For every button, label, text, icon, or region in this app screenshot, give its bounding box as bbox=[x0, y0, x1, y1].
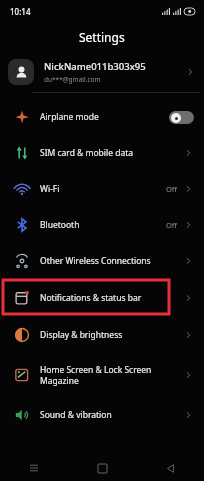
staticText: Bluetooth bbox=[40, 219, 166, 231]
staticText: Sound & vibration bbox=[40, 409, 184, 421]
button[interactable]: Bluetooth bbox=[0, 207, 204, 243]
staticText: Off bbox=[166, 220, 178, 230]
button[interactable]: Other Wireless Connections bbox=[0, 243, 204, 279]
staticText: Wi-Fi bbox=[40, 183, 166, 195]
staticText: NickName011b303x95 bbox=[44, 60, 146, 73]
button[interactable]: Home bbox=[68, 455, 136, 481]
staticText: Settings bbox=[79, 29, 125, 45]
button[interactable]: Sound & vibration bbox=[0, 397, 204, 433]
button[interactable]: NickName011b303x95 bbox=[0, 52, 204, 92]
button[interactable]: Airplane mode bbox=[0, 99, 204, 135]
staticText: Airplane mode bbox=[40, 111, 169, 123]
button[interactable]: Home Screen & Lock Screen Magazine bbox=[0, 353, 204, 397]
button[interactable]: Display & brightness bbox=[0, 317, 204, 353]
staticText: Off bbox=[166, 184, 178, 194]
button[interactable]: Recents bbox=[0, 455, 68, 481]
button[interactable]: SIM card & mobile data bbox=[0, 135, 204, 171]
button[interactable]: Back bbox=[136, 455, 204, 481]
staticText: Other Wireless Connections bbox=[40, 255, 184, 267]
staticText: Display & brightness bbox=[40, 329, 184, 341]
button[interactable]: Wi-Fi bbox=[0, 171, 204, 207]
button[interactable]: Airplane mode toggle bbox=[169, 111, 194, 124]
staticText: SIM card & mobile data bbox=[40, 147, 184, 159]
button[interactable]: Notifications & status bar bbox=[0, 279, 204, 317]
staticText: du***@gmail.com bbox=[44, 75, 101, 84]
staticText: Home Screen & Lock Screen Magazine bbox=[40, 364, 184, 386]
staticText: Notifications & status bar bbox=[40, 292, 184, 304]
staticText: 10:14 bbox=[10, 6, 31, 17]
